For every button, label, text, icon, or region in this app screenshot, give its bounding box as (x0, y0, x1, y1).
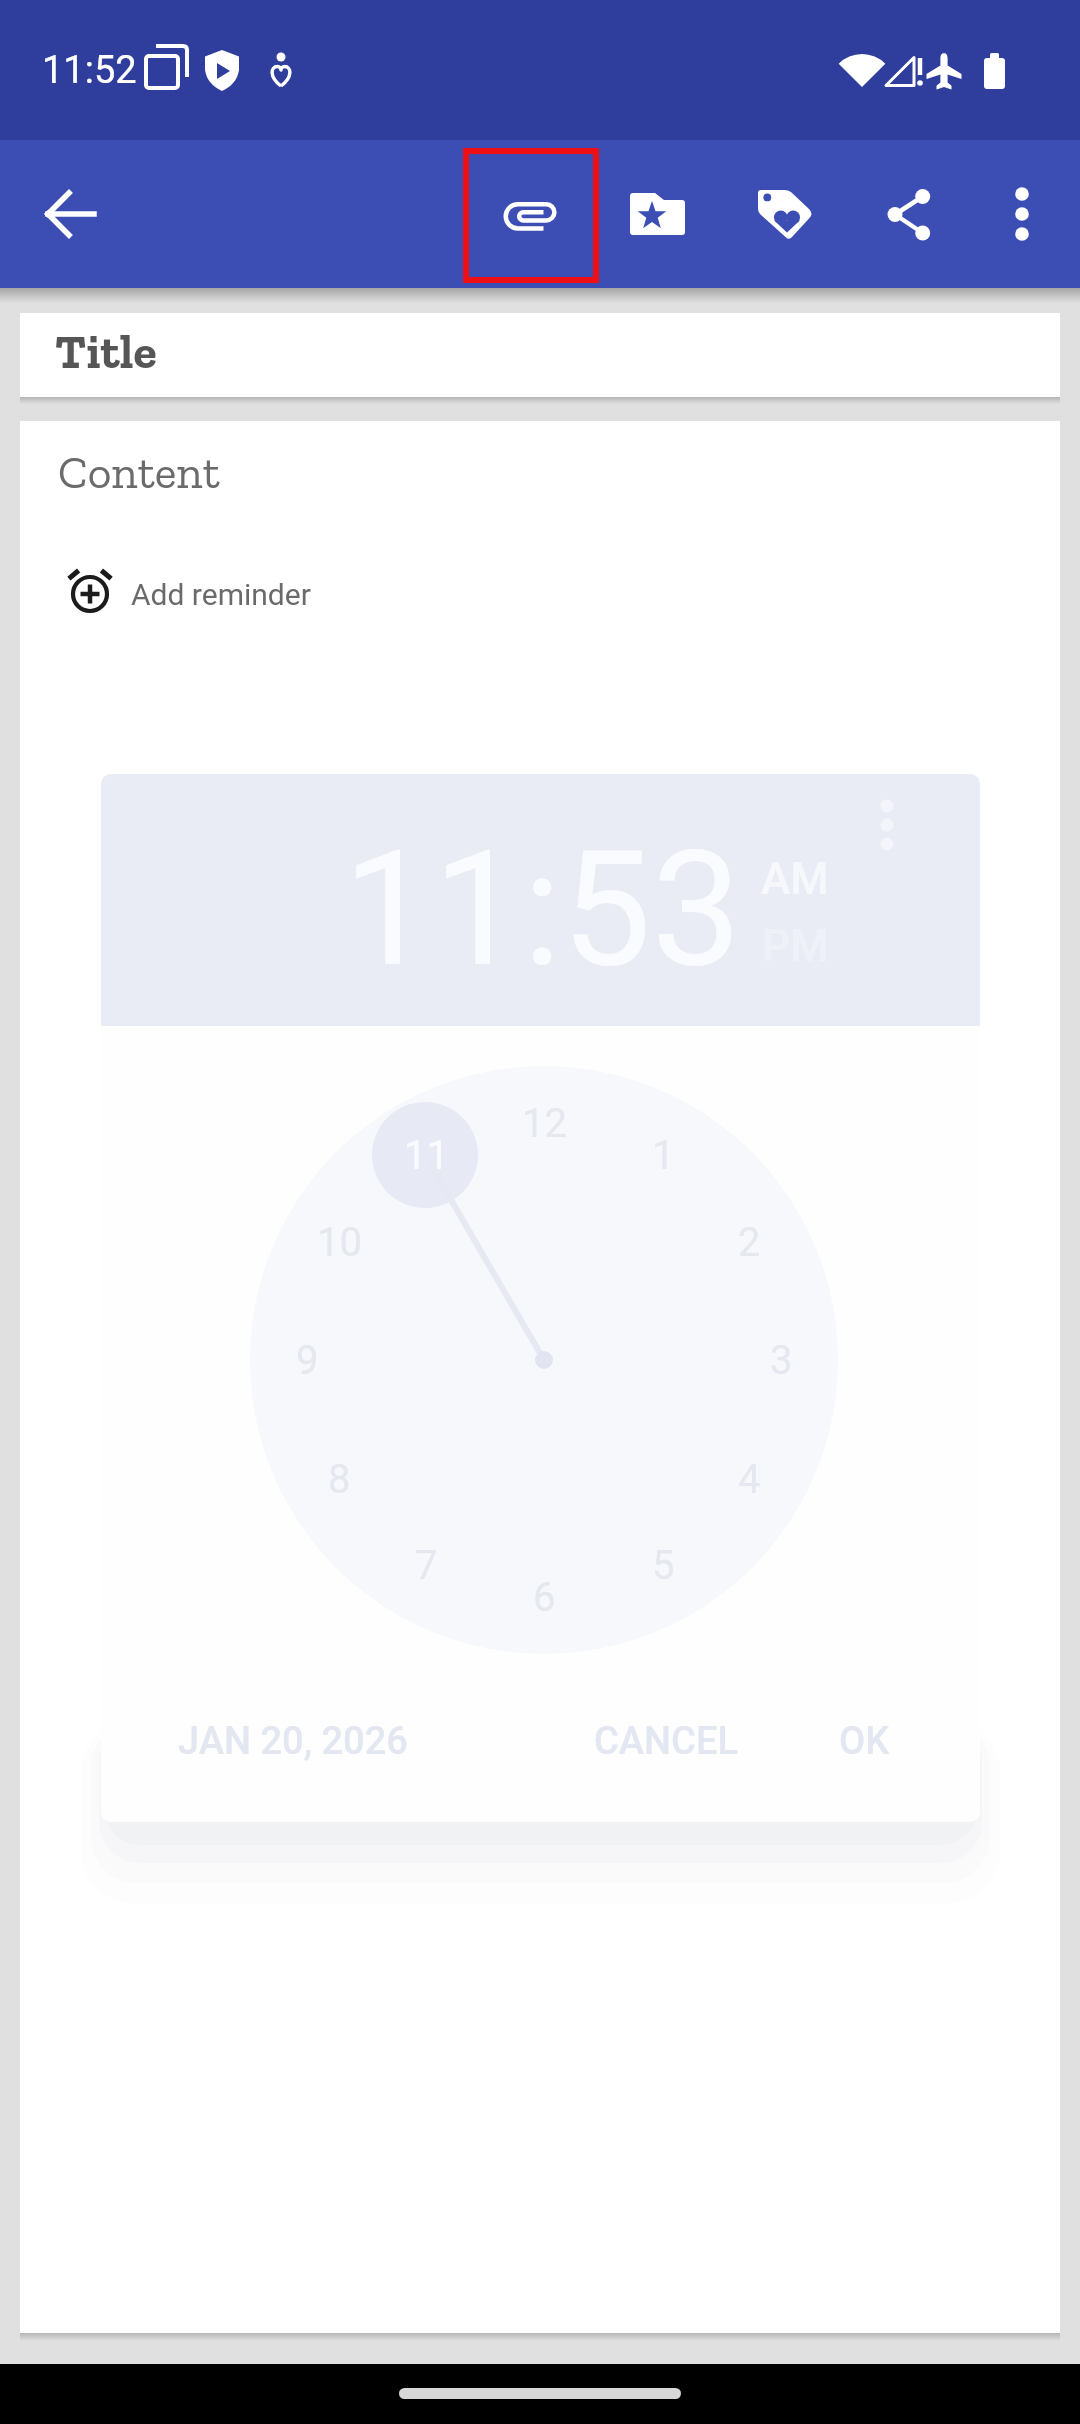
staticText: 12 (522, 1100, 567, 1147)
staticText: 11 (404, 1132, 449, 1179)
staticText: 6 (533, 1574, 556, 1621)
staticText: 5 (652, 1542, 675, 1589)
staticText: AM (761, 853, 829, 905)
staticText: 9 (296, 1337, 319, 1384)
staticText: JAN 20, 2026 (178, 1719, 408, 1764)
staticText: OK (839, 1719, 890, 1764)
staticText: 4 (738, 1456, 761, 1503)
button[interactable] (482, 166, 578, 262)
staticText: Add reminder (131, 577, 311, 612)
staticText: 10 (317, 1219, 362, 1266)
button[interactable] (609, 166, 705, 262)
button[interactable] (861, 166, 957, 262)
staticText: 11:53 (343, 816, 742, 1004)
staticText: 7 (415, 1542, 438, 1589)
staticText: CANCEL (594, 1719, 738, 1764)
button[interactable]: Title (20, 313, 1060, 397)
staticText: 11:52 (42, 48, 137, 93)
button[interactable] (23, 166, 119, 262)
staticText: 3 (770, 1337, 793, 1384)
staticText: Title (55, 323, 157, 381)
button[interactable] (737, 166, 833, 262)
staticText: Content (58, 445, 220, 500)
staticText: 1 (652, 1132, 675, 1179)
button[interactable]: Add reminder (20, 556, 1060, 632)
button[interactable] (974, 166, 1070, 262)
staticText: 8 (328, 1456, 351, 1503)
button[interactable]: Content (20, 421, 1060, 2333)
staticText: 2 (738, 1219, 761, 1266)
